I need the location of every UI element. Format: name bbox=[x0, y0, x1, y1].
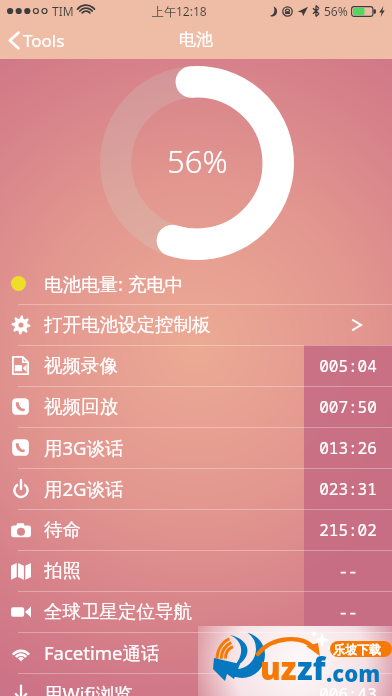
staticText: TIM bbox=[52, 3, 74, 19]
button[interactable]: 用2G谈话 bbox=[0, 468, 392, 509]
button[interactable]: 拍照 bbox=[0, 550, 392, 591]
staticText: 视频录像 bbox=[44, 354, 118, 377]
button[interactable]: Tools bbox=[0, 23, 77, 58]
staticText: 电池 bbox=[179, 29, 213, 50]
staticText: 006:43 bbox=[319, 683, 377, 696]
staticText: 56% bbox=[324, 3, 348, 19]
staticText: 023:31 bbox=[319, 478, 377, 500]
button[interactable]: 全球卫星定位导航 bbox=[0, 591, 392, 632]
staticText: 拍照 bbox=[44, 559, 81, 582]
staticText: 013:26 bbox=[319, 437, 377, 459]
staticText: 007:50 bbox=[319, 396, 377, 418]
staticText: 乐坡下载 bbox=[333, 642, 381, 657]
button[interactable]: 电池电量: 充电中 bbox=[0, 263, 392, 304]
staticText: -- bbox=[338, 560, 358, 582]
staticText: 56% bbox=[167, 140, 228, 182]
staticText: Facetime通话 bbox=[44, 640, 160, 665]
button[interactable]: Facetime通话 bbox=[0, 632, 392, 673]
staticText: 电池电量: 充电中 bbox=[44, 271, 184, 296]
staticText: uz bbox=[260, 647, 297, 689]
button[interactable]: 视频录像 bbox=[0, 345, 392, 386]
staticText: 待命 bbox=[44, 518, 81, 541]
staticText: 上午12:18 bbox=[152, 3, 207, 19]
staticText: 用3G谈话 bbox=[44, 435, 124, 460]
staticText: 用Wifi浏览 bbox=[44, 681, 133, 696]
staticText: 005:04 bbox=[319, 355, 377, 377]
button[interactable]: 用Wifi浏览 bbox=[0, 673, 392, 696]
button[interactable]: 打开电池设定控制板 bbox=[0, 304, 392, 345]
other: Open battery settings bbox=[351, 319, 363, 331]
button[interactable]: 视频回放 bbox=[0, 386, 392, 427]
staticText: 全球卫星定位导航 bbox=[44, 600, 192, 623]
staticText: Tools bbox=[23, 29, 65, 52]
staticText: -- bbox=[338, 601, 358, 623]
button[interactable]: 用3G谈话 bbox=[0, 427, 392, 468]
button[interactable]: 待命 bbox=[0, 509, 392, 550]
staticText: .com bbox=[326, 658, 381, 688]
staticText: 视频回放 bbox=[44, 395, 118, 418]
staticText: 打开电池设定控制板 bbox=[44, 313, 211, 336]
staticText: 215:02 bbox=[319, 519, 377, 541]
staticText: 用2G谈话 bbox=[44, 476, 124, 501]
staticText: zf bbox=[297, 647, 326, 689]
